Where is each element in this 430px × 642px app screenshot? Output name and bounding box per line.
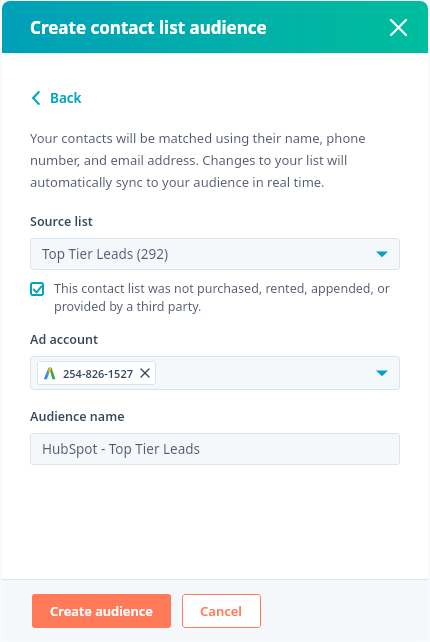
staticText: Source list [30,213,93,230]
staticText: Ad account [30,331,99,348]
staticText: This contact list was not purchased, ren… [54,280,400,315]
staticText: Cancel [200,602,243,620]
staticText: Create audience [50,602,153,620]
button[interactable]: Close [384,13,412,41]
button[interactable]: HubSpot - Top Tier Leads [30,433,400,465]
button[interactable]: Back [30,87,84,109]
staticText: Create contact list audience [30,16,267,39]
staticText: 254-826-1527 [63,366,133,381]
button[interactable]: Remove ad account [140,368,150,378]
staticText: HubSpot - Top Tier Leads [42,440,201,458]
staticText: Back [50,89,82,107]
button[interactable]: This contact list was not purchased, ren… [30,280,400,315]
button[interactable]: 254-826-1527 [30,356,400,390]
button[interactable]: Cancel [182,594,261,628]
button[interactable]: Create audience [32,594,171,628]
staticText: Audience name [30,408,125,425]
button[interactable]: Top Tier Leads (292) [30,238,400,270]
staticText: Top Tier Leads (292) [42,245,376,263]
staticText: Your contacts will be matched using thei… [30,129,400,191]
